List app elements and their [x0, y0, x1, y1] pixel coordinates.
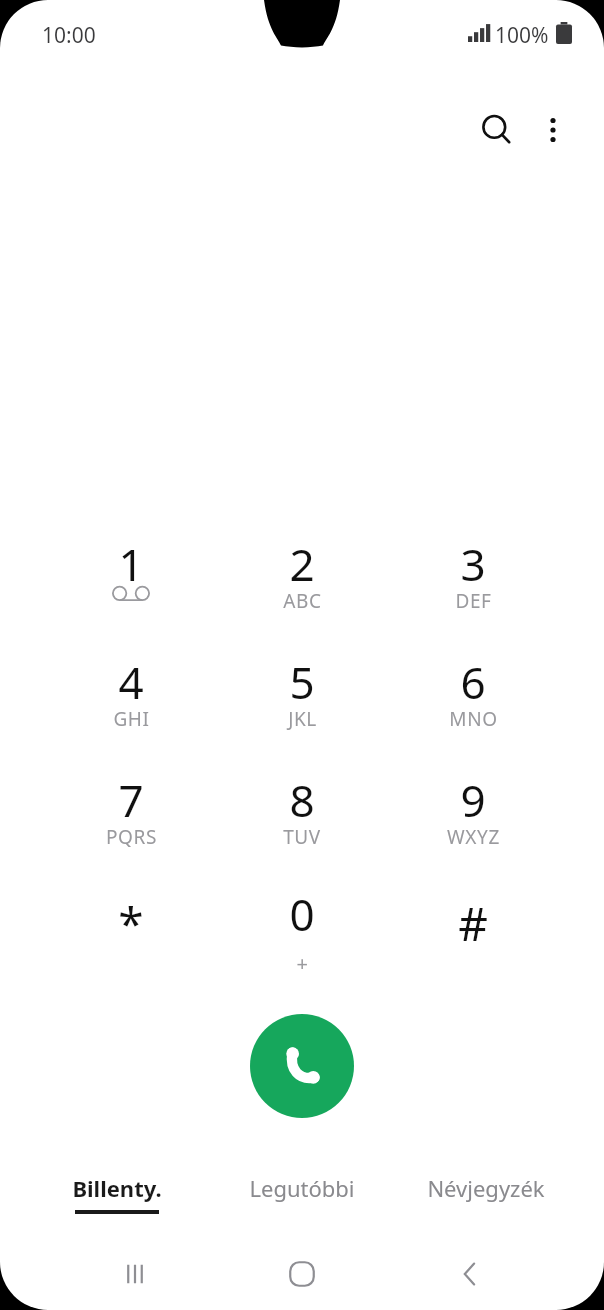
staticText: 8: [289, 770, 315, 830]
staticText: Billenty.: [72, 1173, 162, 1203]
staticText: DEF: [455, 588, 492, 614]
staticText: 0: [289, 884, 315, 944]
button[interactable]: More options: [525, 102, 581, 158]
staticText: 100%: [495, 21, 549, 50]
button[interactable]: 9: [401, 756, 545, 860]
staticText: +: [296, 950, 309, 977]
staticText: TUV: [283, 824, 321, 850]
button[interactable]: 8: [230, 756, 374, 860]
staticText: WXYZ: [447, 824, 500, 850]
staticText: 10:00: [42, 21, 96, 50]
staticText: GHI: [113, 706, 150, 732]
button[interactable]: Névjegyzék: [391, 1155, 581, 1227]
staticText: 7: [118, 770, 144, 830]
staticText: Névjegyzék: [427, 1173, 545, 1203]
button[interactable]: 3: [401, 520, 545, 624]
staticText: 6: [460, 652, 486, 712]
button[interactable]: 1: [59, 520, 203, 624]
button[interactable]: Recents: [99, 1238, 171, 1310]
button[interactable]: 5: [230, 638, 374, 742]
staticText: 9: [460, 770, 486, 830]
staticText: MNO: [449, 706, 498, 732]
button[interactable]: 2: [230, 520, 374, 624]
button[interactable]: *: [59, 870, 203, 974]
staticText: JKL: [288, 706, 317, 732]
button[interactable]: Home: [266, 1238, 338, 1310]
button[interactable]: 7: [59, 756, 203, 860]
button[interactable]: Search: [469, 102, 525, 158]
staticText: ABC: [283, 588, 322, 614]
staticText: 2: [289, 534, 315, 594]
staticText: 1: [118, 534, 144, 594]
button[interactable]: Call: [250, 1014, 354, 1118]
button[interactable]: 6: [401, 638, 545, 742]
staticText: *: [118, 892, 144, 955]
staticText: 5: [289, 652, 315, 712]
staticText: Legutóbbi: [249, 1173, 355, 1203]
button[interactable]: 0: [230, 870, 374, 974]
staticText: 4: [118, 652, 144, 712]
button[interactable]: Back: [434, 1238, 506, 1310]
button[interactable]: #: [401, 870, 545, 974]
button[interactable]: Billenty.: [22, 1155, 212, 1227]
staticText: 3: [460, 534, 486, 594]
staticText: PQRS: [106, 824, 157, 850]
staticText: #: [458, 892, 488, 955]
button[interactable]: 4: [59, 638, 203, 742]
button[interactable]: Legutóbbi: [207, 1155, 397, 1227]
